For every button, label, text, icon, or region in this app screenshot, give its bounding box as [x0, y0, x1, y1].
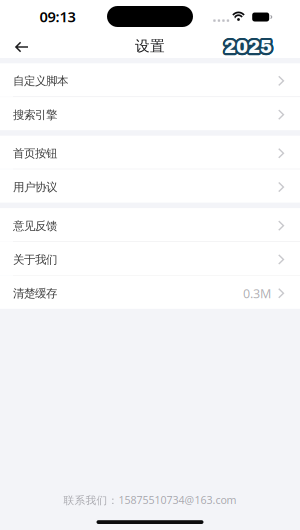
staticText: 2025 — [223, 38, 271, 57]
staticText: 联系我们：15875510734@163.com — [63, 493, 236, 507]
staticText: 2025 — [224, 36, 272, 55]
staticText: 2025 — [223, 36, 271, 55]
staticText: 2025 — [224, 37, 272, 56]
button[interactable]: Back — [0, 30, 59, 58]
staticText: 2025 — [224, 39, 272, 59]
staticText: 2025 — [224, 38, 272, 57]
staticText: 2025 — [222, 36, 270, 55]
button[interactable]: 清楚缓存 — [0, 276, 300, 309]
staticText: 0.3M — [243, 285, 271, 302]
staticText: 2025 — [223, 35, 271, 55]
staticText: 2025 — [223, 37, 271, 57]
staticText: 2025 — [226, 37, 274, 57]
staticText: 2025 — [223, 38, 271, 58]
staticText: 2025 — [225, 37, 273, 56]
staticText: 2025 — [225, 38, 273, 58]
staticText: 2025 — [225, 37, 273, 57]
button[interactable]: 首页按钮 — [0, 136, 300, 169]
staticText: 搜索引擎 — [13, 108, 57, 122]
staticText: 2025 — [222, 39, 270, 58]
staticText: 2025 — [225, 35, 273, 55]
button[interactable]: 自定义脚本 — [0, 63, 300, 96]
staticText: 2025 — [224, 37, 272, 57]
staticText: 2025 — [223, 37, 271, 56]
staticText: 自定义脚本 — [13, 74, 68, 88]
staticText: 2025 — [225, 39, 273, 59]
button[interactable]: 用户协议 — [0, 169, 300, 203]
staticText: 2025 — [225, 37, 273, 57]
button[interactable]: 关于我们 — [0, 242, 300, 275]
staticText: 2025 — [223, 37, 271, 56]
button[interactable]: 搜索引擎 — [0, 97, 300, 130]
staticText: 2025 — [224, 35, 272, 55]
button[interactable]: 意见反馈 — [0, 208, 300, 241]
staticText: 2025 — [223, 38, 271, 57]
staticText: 2025 — [223, 37, 271, 57]
staticText: 2025 — [226, 36, 274, 56]
staticText: 2025 — [222, 36, 270, 56]
staticText: 2025 — [224, 36, 272, 55]
staticText: 2025 — [225, 36, 273, 55]
staticText: 2025 — [224, 38, 272, 58]
staticText: 设置 — [135, 37, 165, 55]
staticText: 2025 — [222, 38, 270, 58]
staticText: 关于我们 — [13, 252, 57, 267]
staticText: 清楚缓存 — [13, 286, 57, 301]
staticText: 2025 — [224, 37, 272, 57]
staticText: 2025 — [223, 36, 271, 56]
button[interactable]: 设置 — [120, 30, 180, 58]
staticText: 2025 — [224, 36, 272, 56]
staticText: 09:13 — [39, 7, 75, 26]
staticText: 2025 — [222, 37, 270, 57]
button[interactable]: 2025 — [220, 30, 276, 58]
staticText: 意见反馈 — [13, 219, 57, 233]
staticText: 首页按钮 — [13, 146, 57, 161]
staticText: 2025 — [223, 39, 271, 59]
staticText: 2025 — [226, 38, 274, 58]
staticText: 2025 — [223, 38, 271, 58]
staticText: 2025 — [224, 38, 272, 58]
staticText: 用户协议 — [13, 180, 57, 194]
staticText: 2025 — [225, 36, 273, 56]
staticText: 2025 — [225, 38, 273, 57]
staticText: 2025 — [224, 38, 272, 57]
staticText: 2025 — [225, 39, 273, 58]
